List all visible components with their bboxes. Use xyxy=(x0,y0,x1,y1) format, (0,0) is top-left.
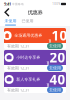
staticText: 全场通用优惠券 xyxy=(14,33,42,38)
button[interactable]: 未使用 xyxy=(2,17,19,25)
staticText: 小时达专享券 xyxy=(16,55,40,60)
staticText: 20 xyxy=(49,49,65,66)
button[interactable]: Back xyxy=(0,8,14,17)
staticText: ¥ xyxy=(46,81,49,88)
staticText: 去使用 xyxy=(49,87,61,92)
staticText: 未使用 xyxy=(4,18,16,23)
button[interactable]: 全场通用优惠券 xyxy=(4,28,66,49)
staticText: 100% xyxy=(52,2,60,6)
button[interactable]: 新人专享礼券 xyxy=(4,72,66,93)
staticText: 10 xyxy=(51,27,67,44)
staticText: 优惠券 xyxy=(27,9,42,16)
button[interactable]: 已使用 xyxy=(19,17,36,25)
staticText: 9:41 xyxy=(4,1,11,7)
staticText: 有效期 12.31 xyxy=(7,65,29,71)
staticText: ¥ xyxy=(48,37,51,44)
staticText: 新人专享礼券 xyxy=(16,77,40,82)
staticText: 40 xyxy=(49,71,65,88)
staticText: 有效期 12.31 xyxy=(7,87,29,93)
staticText: ¥ xyxy=(46,59,49,66)
button[interactable]: 小时达专享券 xyxy=(4,50,66,71)
staticText: 去使用 xyxy=(49,43,61,48)
staticText: 中国移动 xyxy=(11,2,24,6)
staticText: 去使用 xyxy=(49,65,61,70)
staticText: 已使用 xyxy=(21,18,33,23)
staticText: 有效期 12.31 xyxy=(7,43,29,49)
